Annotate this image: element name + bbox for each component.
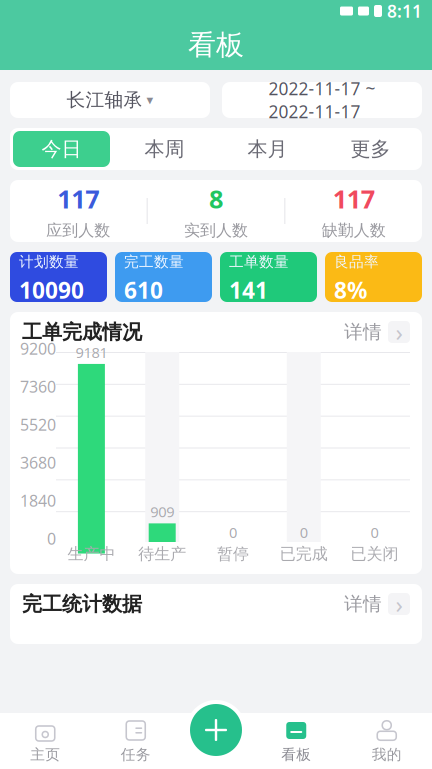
staticText: › [395, 316, 402, 348]
staticText: 详情 [344, 320, 382, 343]
staticText: 10090 [19, 275, 84, 305]
staticText: 5520 [20, 414, 56, 435]
button[interactable]: 本周 [113, 128, 216, 170]
staticText: 完工数量 [124, 253, 184, 271]
button[interactable]: 详情 [344, 320, 410, 343]
staticText: 更多 [350, 137, 390, 161]
staticText: 良品率 [334, 253, 379, 271]
staticText: 工单数量 [229, 253, 289, 271]
staticText: 117 [333, 182, 375, 215]
staticText: 909 [150, 502, 174, 521]
staticText: 8% [334, 275, 367, 305]
staticText: 看板 [188, 28, 244, 62]
button[interactable]: 我的 [341, 713, 432, 769]
button[interactable]: 主页 [0, 713, 90, 769]
staticText: 生产中 [67, 544, 115, 564]
button[interactable]: 长江轴承 [10, 82, 210, 118]
staticText: 9181 [75, 342, 107, 362]
staticText: 详情 [344, 592, 382, 615]
button[interactable]: 完工数量 [115, 252, 212, 302]
button[interactable]: 更多 [319, 128, 422, 170]
staticText: 141 [229, 275, 268, 305]
staticText: 计划数量 [19, 253, 79, 271]
staticText: 已完成 [280, 544, 328, 564]
button[interactable]: 任务 [90, 713, 181, 769]
staticText: 完工统计数据 [22, 592, 142, 616]
button[interactable]: 今日 [10, 128, 113, 170]
staticText: 7360 [20, 376, 56, 397]
staticText: 0 [229, 522, 237, 542]
button[interactable]: 良品率 [325, 252, 422, 302]
staticText: 缺勤人数 [322, 220, 386, 240]
staticText: 已关闭 [351, 544, 399, 564]
staticText: 暂停 [217, 544, 249, 564]
staticText: 待生产 [138, 544, 186, 564]
staticText: 实到人数 [184, 220, 248, 240]
staticText: 工单完成情况 [22, 320, 142, 344]
button[interactable]: 计划数量 [10, 252, 107, 302]
staticText: 我的 [372, 745, 402, 763]
staticText: 本月 [247, 137, 287, 161]
staticText: ▾ [146, 92, 153, 107]
button[interactable]: 工单数量 [220, 252, 317, 302]
staticText: 看板 [281, 745, 311, 763]
staticText: 1840 [20, 490, 56, 511]
staticText: 117 [57, 182, 99, 215]
staticText: 8:11 [387, 0, 422, 22]
button[interactable]: 详情 [344, 592, 410, 615]
button[interactable]: 看板 [251, 713, 341, 769]
staticText: 9200 [20, 338, 56, 359]
button[interactable]: 新建 [186, 700, 246, 760]
staticText: 今日 [41, 137, 81, 161]
staticText: 610 [124, 275, 163, 305]
button[interactable]: 2022-11-17 ~ 2022-11-17 [222, 82, 422, 118]
staticText: 应到人数 [46, 220, 110, 240]
staticText: 任务 [121, 745, 151, 763]
staticText: 主页 [30, 745, 60, 763]
staticText: 2022-11-17 ~ 2022-11-17 [268, 77, 375, 123]
staticText: 0 [47, 528, 56, 549]
staticText: 3680 [20, 452, 56, 473]
staticText: 本周 [144, 137, 184, 161]
staticText: › [395, 588, 402, 620]
staticText: 长江轴承 [66, 88, 142, 111]
button[interactable]: 本月 [216, 128, 319, 170]
staticText: 0 [300, 522, 308, 542]
staticText: 0 [371, 522, 379, 542]
staticText: 8 [209, 182, 223, 215]
